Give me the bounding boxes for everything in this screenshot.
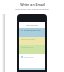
staticText: Message body (21, 46, 34, 48)
staticText: To recipient@mail.com (21, 29, 41, 31)
staticText: Attachment (24, 56, 34, 58)
staticText: Subject line here (21, 38, 36, 40)
staticText: Write an Email (20, 2, 45, 7)
staticText: New message (26, 24, 38, 26)
staticText: Lorem ipsum dolor sit amet consectetur (15, 8, 49, 10)
